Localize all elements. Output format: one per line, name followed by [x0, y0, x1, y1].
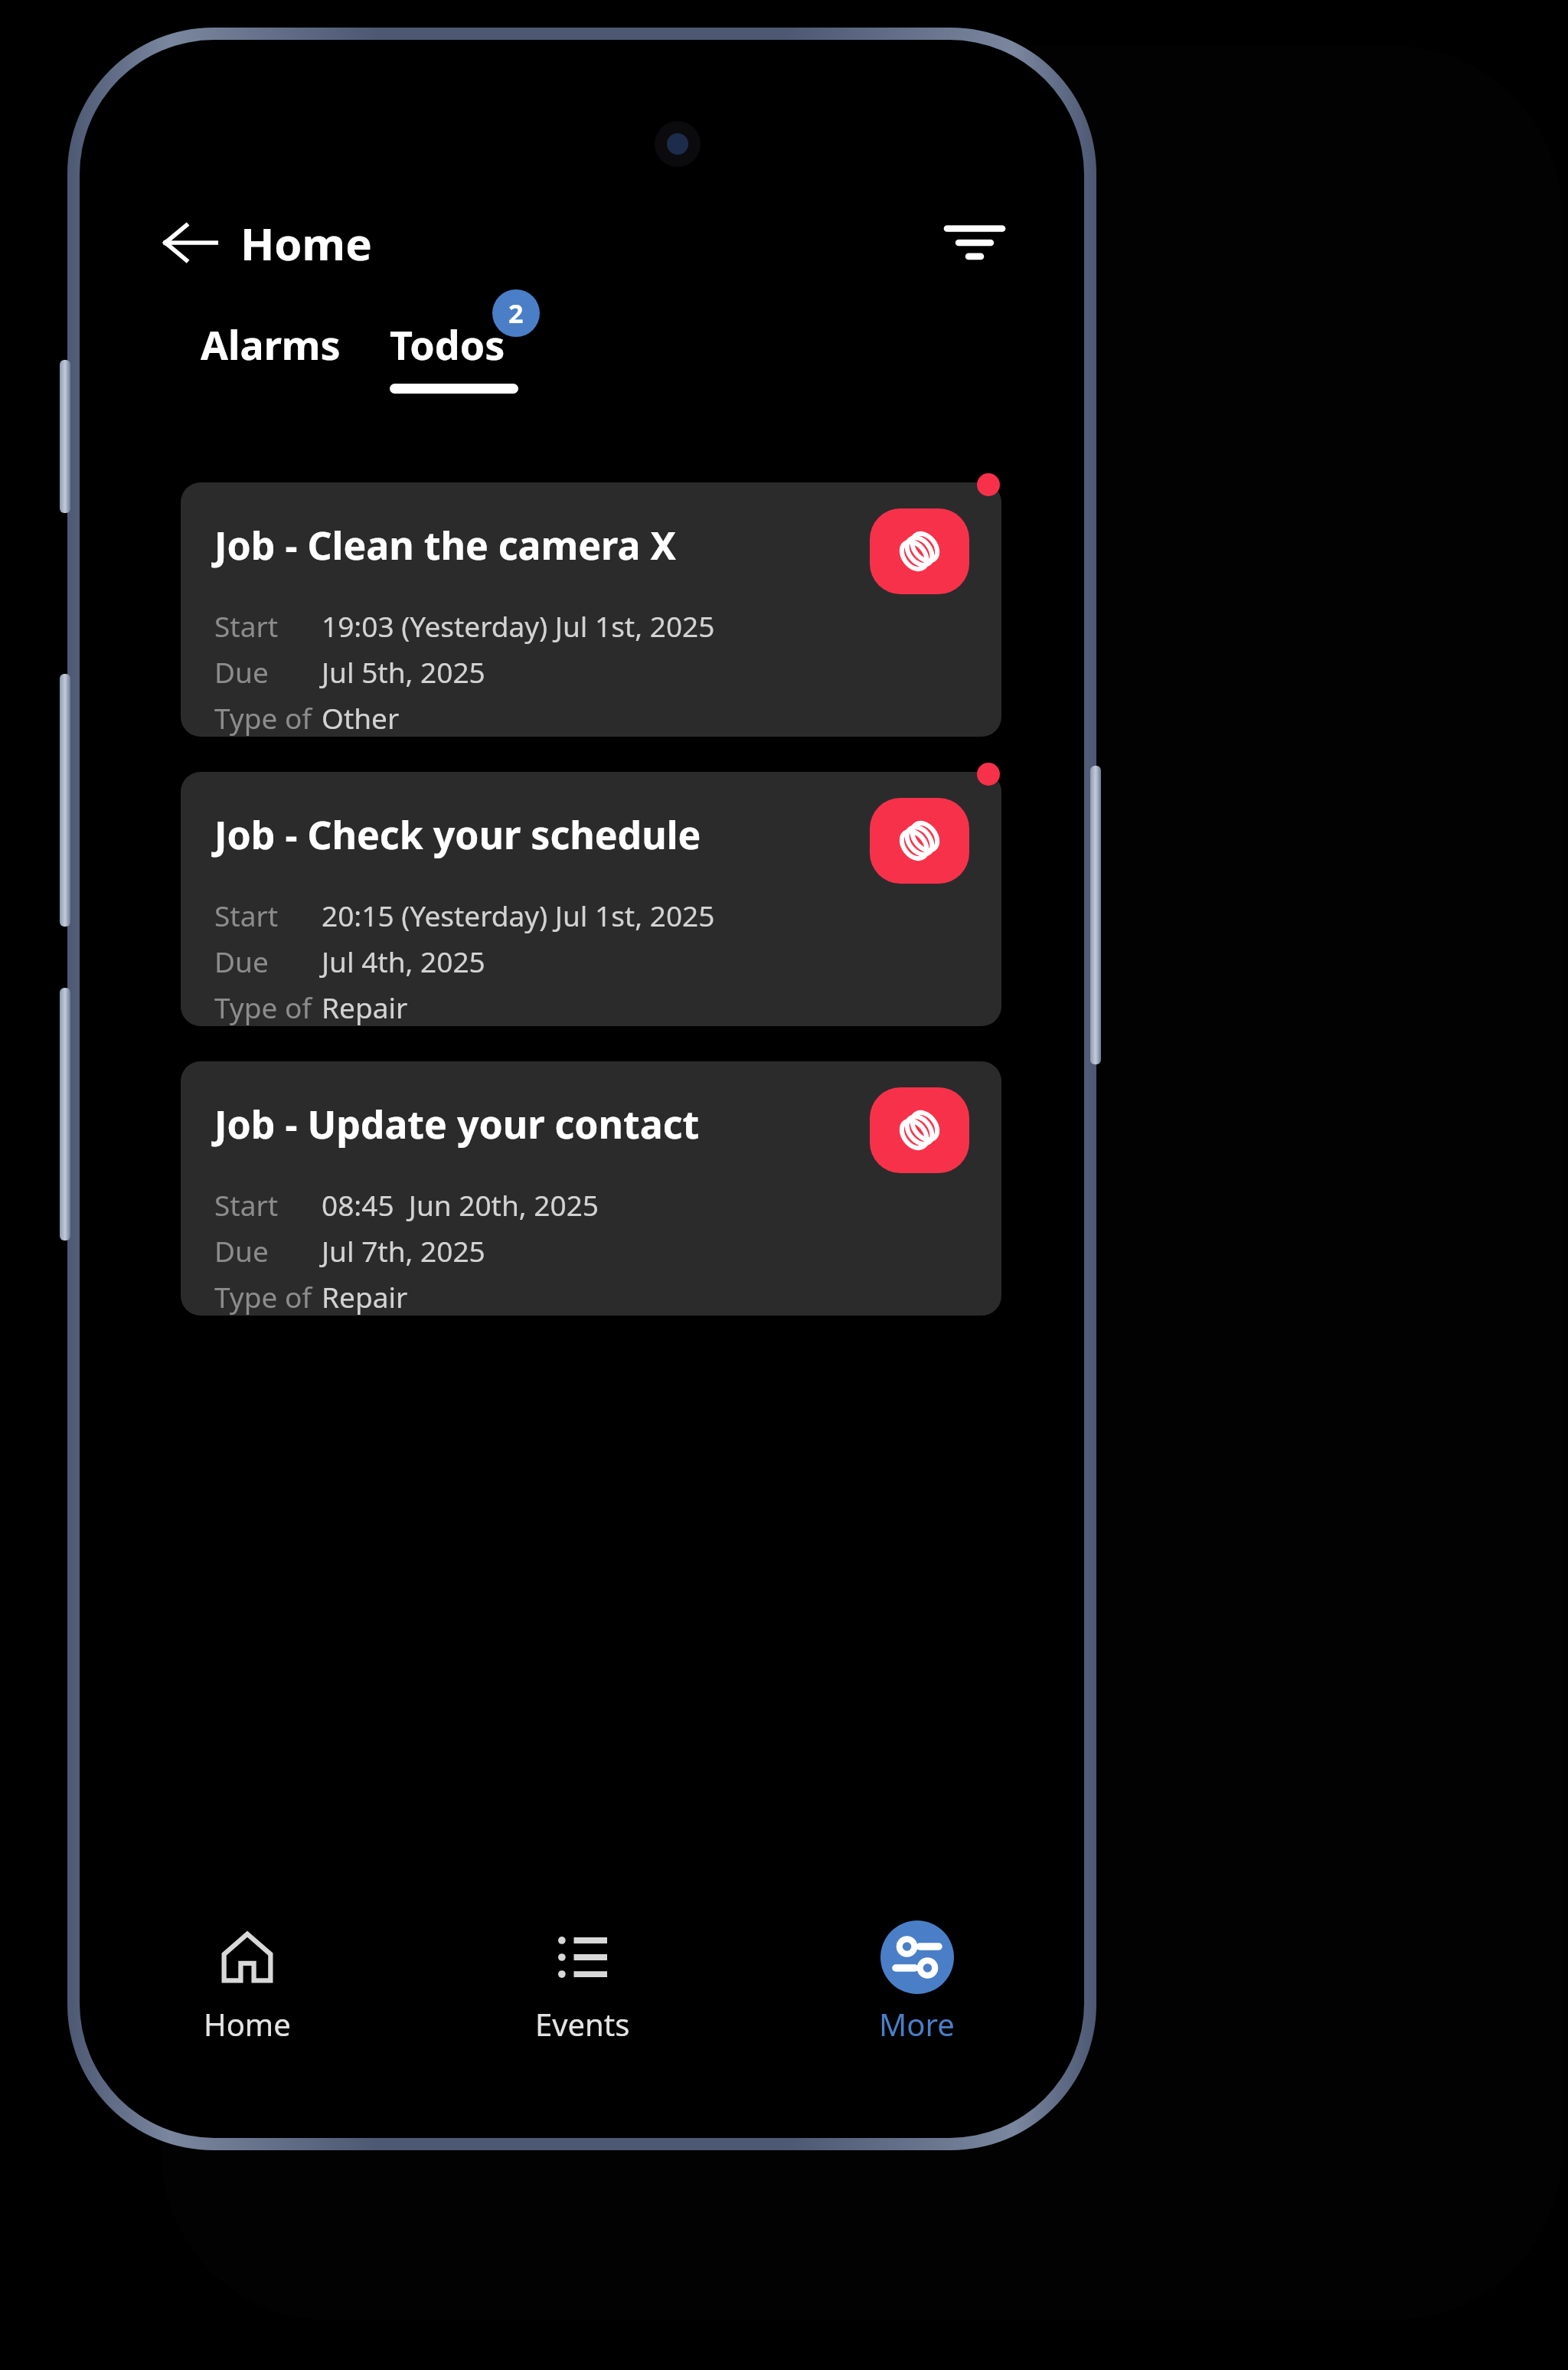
staticText: Type of Job:: [214, 988, 322, 1026]
button[interactable]: Job - Check your schedule: [181, 772, 1001, 1026]
staticText: Job - Check your schedule: [214, 809, 701, 861]
staticText: Due Date:: [214, 942, 322, 980]
button[interactable]: Filter: [933, 201, 1017, 285]
button[interactable]: Job - Update your contact: [181, 1061, 1001, 1316]
staticText: Type of Job:: [214, 1277, 322, 1316]
staticText: 20:15 (Yesterday) Jul 1st, 2025: [322, 896, 715, 934]
button[interactable]: Job - Clean the camera X: [181, 482, 1001, 737]
staticText: Job - Clean the camera X: [214, 519, 676, 571]
staticText: Type of Job:: [214, 698, 322, 737]
staticText: Job - Update your contact: [214, 1098, 700, 1150]
staticText: Events: [535, 2003, 630, 2045]
staticText: 2: [508, 296, 524, 331]
button[interactable]: Back: [153, 206, 227, 279]
staticText: Jul 5th, 2025: [322, 652, 485, 691]
staticText: Jul 7th, 2025: [322, 1231, 485, 1270]
button[interactable]: Job type: [870, 1087, 969, 1173]
staticText: Home: [240, 213, 372, 273]
staticText: 19:03 (Yesterday) Jul 1st, 2025: [322, 606, 715, 645]
button[interactable]: More: [750, 1908, 1084, 2045]
staticText: Due Date:: [214, 1231, 322, 1270]
staticText: 08:45 Jun 20th, 2025: [322, 1185, 599, 1224]
staticText: Other: [322, 698, 400, 737]
staticText: Home: [204, 2003, 291, 2045]
staticText: Due Date:: [214, 652, 322, 691]
staticText: Jul 4th, 2025: [322, 942, 485, 980]
staticText: Start Date: [214, 896, 322, 934]
staticText: Alarms: [201, 317, 341, 371]
button[interactable]: Events: [415, 1908, 750, 2045]
staticText: Todos: [390, 317, 505, 371]
staticText: Repair: [322, 1277, 408, 1316]
button[interactable]: Job type: [870, 798, 969, 884]
staticText: Repair: [322, 988, 408, 1026]
button[interactable]: Job type: [870, 508, 969, 594]
staticText: Start Date: [214, 1185, 322, 1224]
staticText: Start Date: [214, 606, 322, 645]
button[interactable]: Alarms: [194, 300, 347, 438]
button[interactable]: Todos: [390, 300, 518, 438]
button[interactable]: Home: [80, 1908, 415, 2045]
staticText: More: [879, 2003, 955, 2045]
